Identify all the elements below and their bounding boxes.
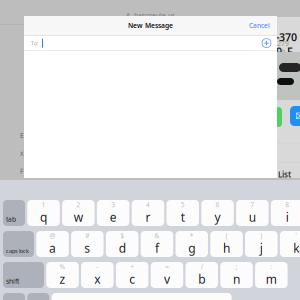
staticText: c [129,271,135,287]
staticText: a [49,240,56,256]
button[interactable]: Cancel [249,21,277,30]
button[interactable]: 2 [62,200,95,226]
button[interactable]: @ [36,231,69,257]
staticText: 7 [250,200,254,209]
staticText: % [59,262,65,271]
button[interactable]: caps lock [3,231,34,257]
button[interactable]: 4 [132,200,164,226]
staticText: - [96,262,98,271]
staticText: ' [295,231,297,240]
staticText: caps lock [6,247,29,254]
staticText: h [223,240,230,256]
button[interactable]: % [46,262,79,288]
staticText: b [198,271,205,287]
button[interactable]: + [116,262,148,288]
button[interactable]: 8 [271,200,300,226]
staticText: y [215,209,221,225]
staticText: To: [31,40,38,47]
staticText: 1 [41,200,45,209]
button[interactable]: # [71,231,104,257]
button[interactable]: tab [3,200,25,226]
staticText: e [110,209,117,225]
button[interactable]: ; [220,262,253,288]
staticText: / [201,262,203,271]
staticText: w [74,209,83,225]
button[interactable]: ( [210,231,243,257]
staticText: u [249,209,256,225]
staticText: t [181,209,185,225]
button[interactable]: 3 [97,200,129,226]
staticText: shift [6,277,19,285]
button[interactable] [27,293,49,300]
button[interactable]: 6 [201,200,234,226]
staticText: r [145,209,150,225]
button[interactable]: 5 [166,200,199,226]
staticText: 4 [146,200,150,209]
staticText: # [85,231,89,240]
staticText: $ [120,231,124,240]
staticText: g [188,240,195,256]
button[interactable]: ) [245,231,278,257]
button[interactable]: $ [106,231,138,257]
button[interactable]: / [185,262,218,288]
button[interactable]: - [81,262,114,288]
staticText: Cancel [249,21,270,30]
staticText: f [155,240,159,256]
staticText: 5 [181,200,185,209]
button[interactable]: = [151,262,183,288]
staticText: ; [236,262,238,271]
button[interactable] [52,293,232,300]
staticText: 3 [111,200,115,209]
staticText: 279 KB ⌄ [277,39,295,57]
staticText: List [278,169,291,180]
staticText: v [164,271,170,287]
staticText: m [266,271,277,287]
staticText: ) [260,231,262,240]
button[interactable]: 1 [27,200,60,226]
button[interactable]: : [255,262,288,288]
staticText: : [270,262,272,271]
staticText: 2 [76,200,80,209]
button[interactable] [3,293,25,300]
staticText: tab [6,215,16,223]
staticText: = [165,262,169,271]
staticText: i [286,209,289,225]
staticText: * [190,231,194,240]
staticText: A harcoeule us [126,11,175,20]
staticText: ( [226,231,228,240]
staticText: z [59,271,65,287]
staticText: n [233,271,240,287]
staticText: E [20,131,24,140]
staticText: d [119,240,126,256]
staticText: s [84,240,90,256]
staticText: @ [49,231,55,240]
staticText: k [293,240,299,256]
staticText: New Message [128,21,173,30]
staticText: 8 [285,200,289,209]
staticText: x [94,271,100,287]
button[interactable]: 7 [236,200,269,226]
button[interactable]: shift [3,262,44,288]
staticText: ✉ [295,109,300,123]
staticText: q [40,209,47,225]
staticText: j [260,240,263,256]
staticText: 6 [216,200,220,209]
staticText: + [130,262,134,271]
button[interactable]: & [141,231,173,257]
staticText: F [20,167,23,176]
button[interactable]: * [175,231,208,257]
button[interactable]: ' [280,231,300,257]
staticText: & [154,231,159,240]
button[interactable]: Add contact [262,39,277,48]
staticText: x [20,149,24,158]
staticText: -3700_F [276,30,297,58]
